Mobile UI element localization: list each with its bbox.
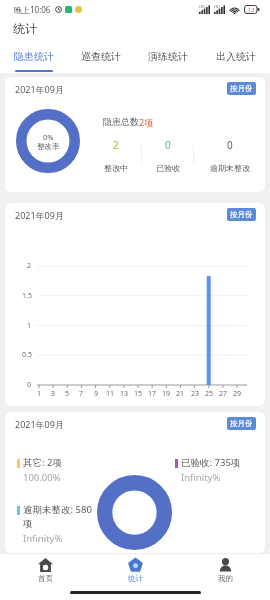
staticText: 隐患统计 (14, 50, 54, 63)
button[interactable]: 隐患统计 (0, 38, 67, 73)
staticText: 晚上10:06 (14, 4, 51, 15)
button[interactable]: 我的 (180, 554, 270, 586)
button[interactable]: 统计 (90, 554, 180, 586)
button[interactable]: 演练统计 (134, 38, 202, 73)
staticText: 29 (233, 389, 242, 399)
staticText: 9 (94, 389, 99, 399)
staticText: 17 (148, 389, 157, 399)
staticText: 0 (227, 138, 233, 152)
staticText: 1 (37, 389, 42, 399)
button[interactable]: 按月份 (227, 417, 256, 430)
button[interactable]: 出入统计 (202, 38, 270, 73)
button[interactable]: 按月份 (227, 82, 256, 95)
staticText: 23 (191, 389, 200, 399)
staticText: 出入统计 (216, 50, 256, 63)
staticText: 统计 (13, 21, 37, 36)
staticText: 7 (79, 389, 84, 399)
staticText: 已验收: 735项 (181, 456, 241, 469)
staticText: 15 (134, 389, 143, 399)
staticText: 3 (51, 389, 56, 399)
staticText: 逾期未整改 (210, 163, 250, 173)
staticText: 21 (176, 389, 185, 399)
staticText: 我的 (218, 574, 233, 583)
staticText: 2 (27, 261, 32, 271)
staticText: 按月份 (230, 84, 253, 93)
staticText: 25 (205, 389, 214, 399)
staticText: HD (214, 4, 220, 9)
staticText: 按月份 (230, 210, 253, 219)
staticText: 19 (162, 389, 171, 399)
staticText: 1.5 (22, 291, 32, 301)
staticText: 按月份 (230, 419, 253, 428)
staticText: 首页 (38, 574, 53, 583)
staticText: 27 (219, 389, 228, 399)
staticText: 2021年09月 (15, 209, 64, 221)
button[interactable]: 首页 (0, 554, 90, 586)
staticText: 统计 (128, 574, 143, 583)
staticText: Infinity% (23, 532, 63, 545)
staticText: 2021年09月 (15, 83, 64, 95)
staticText: 逾期未整改: 580项 (23, 503, 99, 530)
staticText: 隐患总数 (103, 116, 139, 127)
staticText: Infinity% (181, 471, 221, 484)
staticText: 0 (27, 380, 32, 390)
staticText: 2 (113, 138, 119, 152)
staticText: 2021年09月 (15, 418, 64, 430)
staticText: 演练统计 (148, 50, 188, 63)
staticText: 0 (165, 138, 171, 152)
staticText: 100.00% (23, 471, 61, 484)
staticText: 11 (106, 389, 115, 399)
button[interactable]: 按月份 (227, 208, 256, 221)
staticText: 其它: 2项 (23, 456, 62, 469)
staticText: 0.5 (22, 350, 32, 360)
staticText: 整改中 (104, 163, 128, 173)
staticText: 1 (27, 321, 32, 331)
staticText: 巡查统计 (81, 50, 121, 63)
staticText: 整改率 (37, 142, 60, 151)
button[interactable]: 巡查统计 (67, 38, 134, 73)
staticText: 2项 (139, 116, 154, 128)
staticText: HD (199, 4, 205, 9)
staticText: 13 (120, 389, 129, 399)
staticText: 12 (248, 6, 255, 13)
staticText: 5 (65, 389, 70, 399)
staticText: 0% (43, 132, 54, 142)
staticText: 已验收 (156, 163, 180, 173)
